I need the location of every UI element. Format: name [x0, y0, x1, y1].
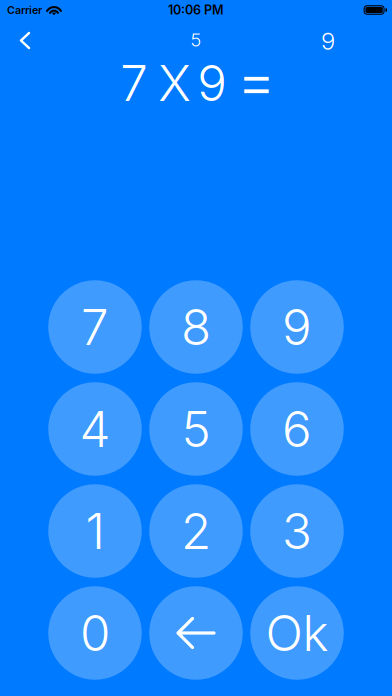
- button[interactable]: Level 9: [307, 15, 349, 60]
- staticText: Carrier: [7, 3, 42, 16]
- button[interactable]: 8: [149, 280, 242, 374]
- staticText: 9: [197, 53, 227, 113]
- staticText: 9: [321, 26, 335, 55]
- button[interactable]: 0: [48, 586, 141, 680]
- staticText: 7: [81, 297, 109, 357]
- staticText: 4: [79, 399, 110, 459]
- staticText: X: [158, 53, 191, 113]
- staticText: 8: [181, 297, 211, 357]
- staticText: 9: [282, 297, 312, 357]
- button[interactable]: 1: [48, 484, 141, 578]
- staticText: 0: [80, 603, 110, 663]
- staticText: 7: [120, 53, 148, 113]
- staticText: Ok: [265, 603, 328, 663]
- staticText: 3: [282, 501, 312, 561]
- staticText: 10:06 PM: [168, 2, 224, 18]
- staticText: 5: [181, 399, 210, 459]
- button[interactable]: Back: [0, 20, 41, 56]
- button[interactable]: 3: [250, 484, 343, 578]
- button[interactable]: Delete: [149, 586, 242, 680]
- button[interactable]: 9: [250, 280, 343, 374]
- button[interactable]: 6: [250, 382, 343, 476]
- button[interactable]: 5: [149, 382, 242, 476]
- staticText: 2: [181, 501, 211, 561]
- button[interactable]: 2: [149, 484, 242, 578]
- button[interactable]: 7: [48, 280, 141, 374]
- staticText: 1: [85, 501, 104, 561]
- button[interactable]: Ok: [250, 586, 343, 680]
- staticText: 6: [282, 399, 312, 459]
- button[interactable]: 4: [48, 382, 141, 476]
- staticText: 5: [190, 28, 201, 51]
